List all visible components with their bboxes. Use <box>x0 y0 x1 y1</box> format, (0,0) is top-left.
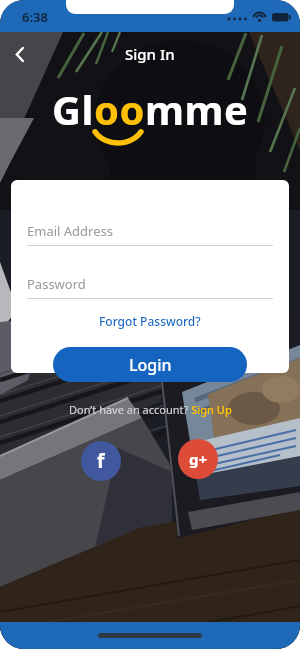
button[interactable]: g+ <box>178 439 218 479</box>
staticText: Don’t have an account? Sign Up <box>69 402 232 417</box>
button[interactable]: Password <box>27 275 273 293</box>
button[interactable]: Login <box>53 347 247 382</box>
button[interactable]: f <box>81 441 121 481</box>
staticText: 6:38 <box>22 8 48 26</box>
staticText: f <box>97 448 105 474</box>
staticText: Forgot Password? <box>99 313 201 329</box>
button[interactable]: Forgot Password? <box>95 309 205 333</box>
staticText: Sign In <box>125 44 175 64</box>
staticText: g+ <box>189 449 208 469</box>
button[interactable] <box>6 40 34 68</box>
button[interactable]: Don’t have an account? Sign Up <box>69 402 232 417</box>
staticText: Gloomme <box>52 82 249 136</box>
button[interactable]: Email Address <box>27 222 273 240</box>
staticText: Login <box>129 354 172 376</box>
